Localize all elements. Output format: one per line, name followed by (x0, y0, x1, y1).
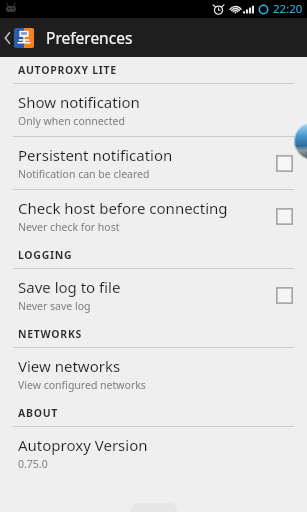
button[interactable]: Persistent notification (0, 137, 307, 189)
button[interactable]: Autoproxy Version (0, 427, 307, 479)
staticText: NETWORKS (18, 327, 83, 341)
staticText: Notification can be cleared (18, 167, 150, 181)
staticText: View configured networks (18, 378, 146, 392)
staticText: View networks (18, 356, 121, 376)
staticText: Autoproxy Version (18, 435, 148, 455)
staticText: Show notification (18, 92, 140, 112)
staticText: Never check for host (18, 220, 120, 234)
button[interactable]: Save log to file (0, 269, 307, 321)
staticText: Preferences (46, 27, 133, 48)
staticText: AUTOPROXY LITE (18, 63, 117, 77)
button[interactable]: Persistent notification checkbox (276, 155, 293, 172)
staticText: 0.75.0 (18, 457, 48, 471)
button[interactable]: Navigate up (0, 18, 36, 57)
staticText: ABOUT (18, 406, 59, 420)
button[interactable]: Check host before connecting checkbox (276, 208, 293, 225)
staticText: Check host before connecting (18, 198, 228, 218)
other: Scroll indicator (294, 122, 307, 160)
button[interactable]: Show notification (0, 84, 307, 136)
staticText: Never save log (18, 299, 91, 313)
button[interactable]: View networks (0, 348, 307, 400)
button[interactable]: Save log to file checkbox (276, 287, 293, 304)
staticText: LOGGING (18, 248, 73, 262)
staticText: 22:20 (273, 1, 303, 17)
staticText: Only when connected (18, 114, 125, 128)
button[interactable]: Check host before connecting (0, 190, 307, 242)
staticText: Persistent notification (18, 145, 173, 165)
staticText: Save log to file (18, 277, 121, 297)
